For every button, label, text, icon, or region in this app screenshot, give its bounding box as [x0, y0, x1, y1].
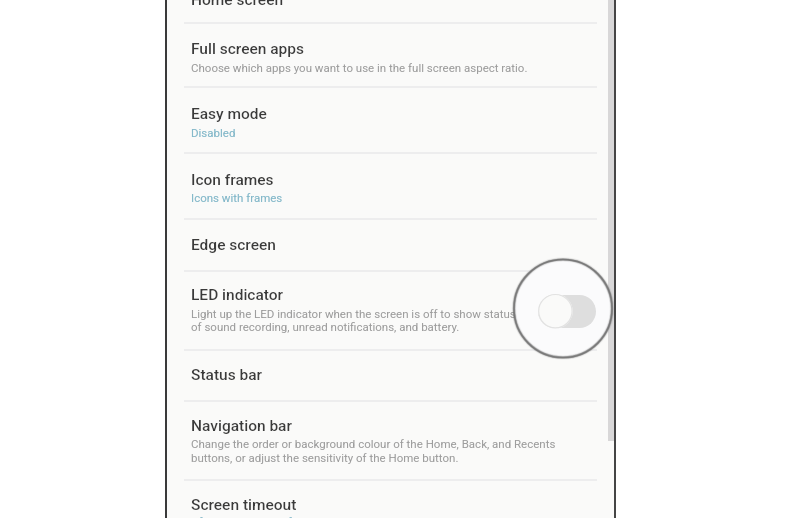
staticText: Status bar: [191, 366, 263, 384]
button[interactable]: Navigation bar: [167, 401, 614, 481]
staticText: Choose which apps you want to use in the…: [191, 61, 528, 74]
staticText: Screen timeout: [191, 496, 297, 514]
staticText: Disabled: [191, 126, 236, 139]
staticText: Full screen apps: [191, 40, 304, 58]
staticText: Light up the LED indicator when the scre…: [191, 307, 516, 320]
staticText: Edge screen: [191, 236, 276, 254]
staticText: Navigation bar: [191, 417, 292, 435]
button[interactable]: Easy mode: [167, 87, 614, 153]
staticText: Icon frames: [191, 171, 274, 189]
button[interactable]: Home screen: [167, 0, 614, 22]
button[interactable]: Screen timeout: [167, 480, 614, 518]
staticText: Home screen: [191, 0, 284, 9]
button[interactable]: Full screen apps: [167, 23, 614, 87]
button[interactable]: Icon frames: [167, 153, 614, 220]
button[interactable]: LED indicator: [167, 271, 614, 350]
staticText: After 30 seconds of inactivity: [191, 515, 341, 518]
staticText: LED indicator: [191, 286, 284, 304]
staticText: Change the order or background colour of…: [191, 437, 556, 450]
button[interactable]: Status bar: [167, 350, 614, 401]
button[interactable]: Edge screen: [167, 219, 614, 271]
staticText: Easy mode: [191, 105, 267, 123]
staticText: Icons with frames: [191, 191, 283, 204]
staticText: buttons, or adjust the sensitivity of th…: [191, 451, 459, 464]
button[interactable]: LED indicator, off: [538, 295, 596, 328]
staticText: of sound recording, unread notifications…: [191, 320, 460, 333]
